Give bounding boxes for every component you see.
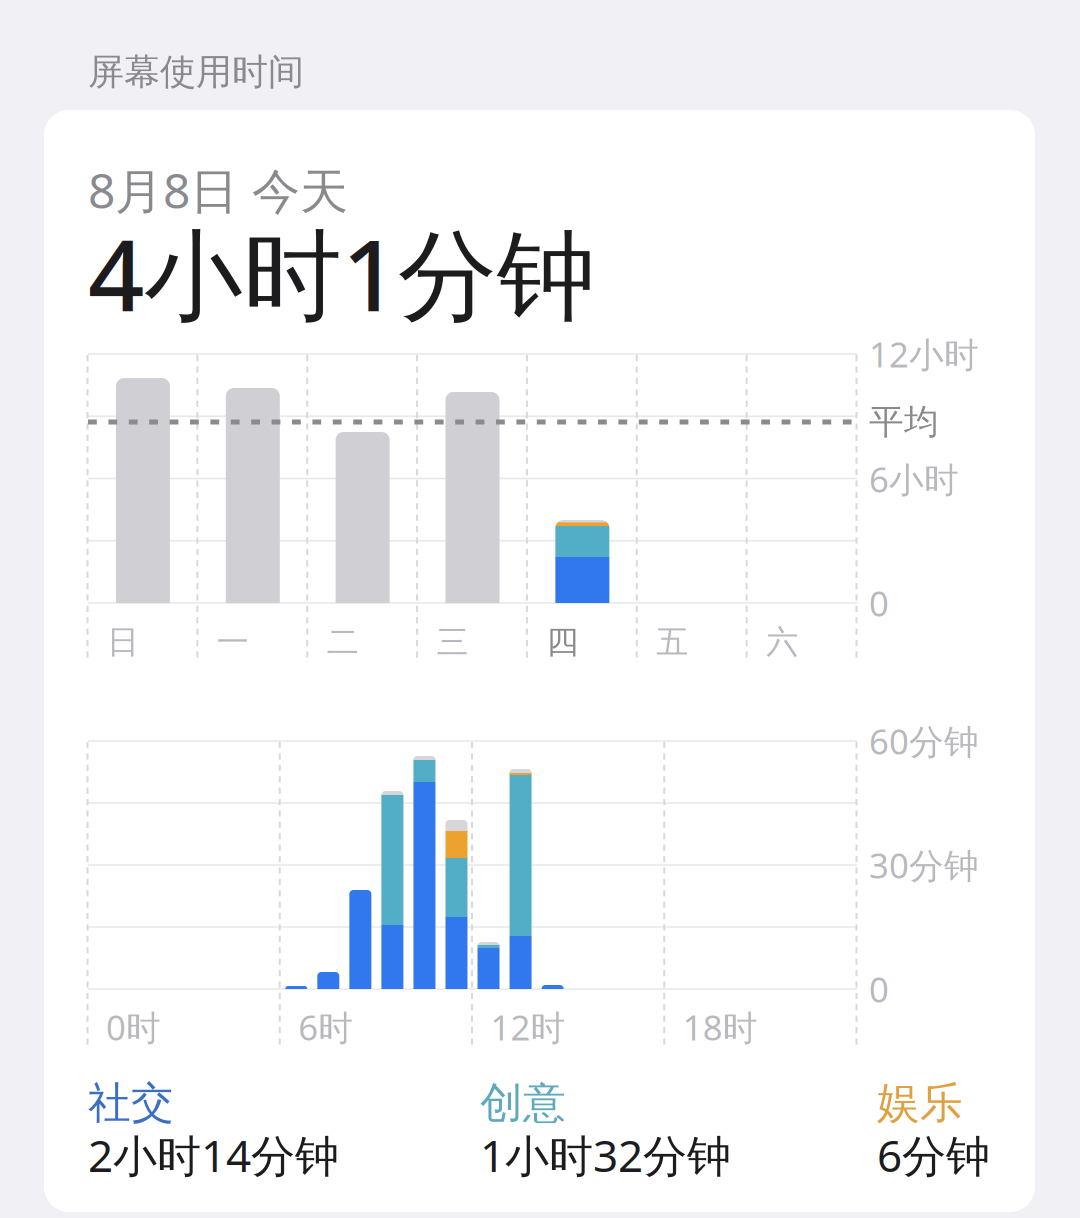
staticText: 五: [656, 622, 688, 662]
staticText: 一: [217, 622, 249, 662]
staticText: 60分钟: [869, 718, 979, 764]
staticText: 0时: [106, 1004, 161, 1050]
staticText: 0: [869, 580, 889, 626]
staticText: 二: [327, 622, 359, 662]
staticText: 娱乐: [877, 1077, 963, 1129]
staticText: 12小时: [869, 331, 979, 377]
staticText: 8月8日 今天: [88, 158, 348, 222]
staticText: 三: [437, 622, 469, 662]
staticText: 1小时32分钟: [480, 1126, 731, 1184]
staticText: 18时: [683, 1004, 758, 1050]
button[interactable]: 社交: [88, 1074, 418, 1184]
staticText: 平均: [869, 401, 939, 443]
staticText: 4小时1分钟: [88, 207, 596, 338]
staticText: 六: [766, 622, 798, 662]
staticText: 0: [869, 966, 889, 1012]
staticText: 社交: [88, 1077, 174, 1129]
staticText: 创意: [480, 1077, 566, 1129]
staticText: 6分钟: [877, 1126, 990, 1184]
staticText: 6时: [298, 1004, 353, 1050]
staticText: 12时: [490, 1004, 565, 1050]
staticText: 6小时: [869, 456, 959, 502]
staticText: 2小时14分钟: [88, 1126, 339, 1184]
button[interactable]: 娱乐: [877, 1074, 1080, 1184]
button[interactable]: 创意: [480, 1074, 810, 1184]
staticText: 30分钟: [869, 842, 979, 888]
staticText: 四: [546, 622, 578, 662]
staticText: 屏幕使用时间: [88, 50, 304, 94]
staticText: 日: [107, 622, 139, 662]
